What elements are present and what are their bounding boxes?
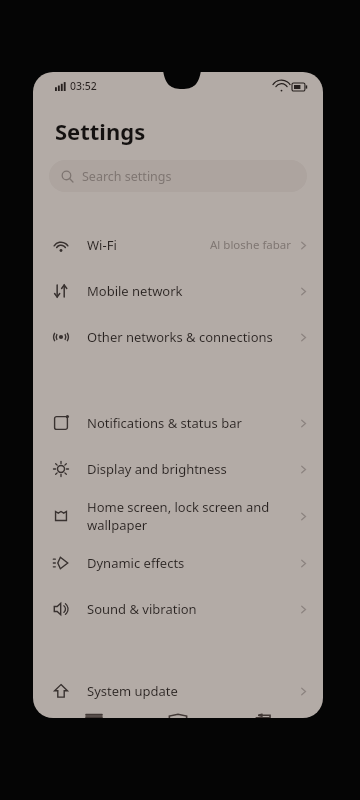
staticText: System update <box>87 682 292 700</box>
button[interactable]: Dynamic effects <box>33 540 323 586</box>
button[interactable]: Back <box>239 714 287 718</box>
staticText: Al bloshe fabar <box>210 237 292 253</box>
staticText: Mobile network <box>87 282 292 300</box>
button[interactable]: Display and brightness <box>33 446 323 492</box>
staticText: Dynamic effects <box>87 554 292 572</box>
staticText: Display and brightness <box>87 460 292 478</box>
staticText: Search settings <box>82 168 172 185</box>
staticText: Wi-Fi <box>87 236 204 254</box>
staticText: Home screen, lock screen and wallpaper <box>87 498 292 534</box>
staticText: Settings <box>55 116 146 146</box>
staticText: Notifications & status bar <box>87 414 292 432</box>
button[interactable]: Mobile network <box>33 268 323 314</box>
staticText: Other networks & connections <box>87 328 292 346</box>
staticText: 03:52 <box>70 79 97 93</box>
button[interactable]: Home screen, lock screen and wallpaper <box>33 492 323 540</box>
button[interactable]: Home <box>154 714 202 718</box>
button[interactable]: Notifications & status bar <box>33 400 323 446</box>
button[interactable]: System update <box>33 668 323 714</box>
button[interactable]: Recent apps <box>70 714 118 718</box>
staticText: Sound & vibration <box>87 600 292 618</box>
button[interactable]: Sound & vibration <box>33 586 323 632</box>
button[interactable]: Other networks & connections <box>33 314 323 360</box>
button[interactable]: Wi-Fi <box>33 222 323 268</box>
button[interactable]: Search settings <box>49 160 307 192</box>
